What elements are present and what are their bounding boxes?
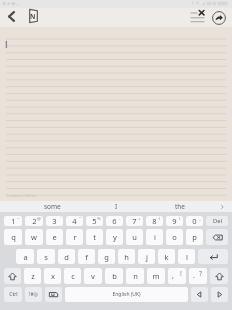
button[interactable]: I [84,201,148,212]
button[interactable]: q [4,229,22,245]
button[interactable]: n [126,268,144,284]
button[interactable]: 5 [86,216,103,226]
button[interactable]: Back [2,9,20,27]
button[interactable]: u [126,229,143,245]
staticText: 7 [132,216,137,226]
button[interactable]: 3 [46,216,63,226]
staticText: ' [60,216,61,222]
button[interactable]: d [58,249,75,264]
button[interactable]: Move right [211,287,228,302]
button[interactable]: r [66,229,83,245]
staticText: z [31,271,35,281]
staticText: I [115,202,118,211]
button[interactable]: l [178,249,195,264]
button[interactable]: f [78,249,95,264]
staticText: o [172,232,177,242]
staticText: 0 [192,216,197,226]
button[interactable]: c [64,268,81,284]
staticText: f [85,252,88,262]
button[interactable]: w [25,229,43,245]
staticText: d [64,252,69,262]
button[interactable]: Move left [191,287,208,302]
staticText: q [11,232,16,242]
button[interactable]: k [158,249,175,264]
staticText: Creative Politics [6,193,38,199]
staticText: b [112,271,117,281]
button[interactable]: p [186,229,203,245]
staticText: _ [199,216,201,222]
staticText: 1 [11,216,16,226]
button[interactable]: a [16,249,34,264]
button[interactable]: . [189,268,207,284]
staticText: y [113,232,117,242]
staticText: Del [213,217,222,225]
button[interactable]: some [20,201,84,212]
button[interactable]: Ctrl [4,287,22,302]
button[interactable]: y [106,229,123,245]
button[interactable]: z [24,268,41,284]
button[interactable]: Shift [210,268,228,284]
staticText: n [133,271,138,281]
button[interactable]: h [118,249,135,264]
button[interactable]: Enter [198,249,228,264]
button[interactable]: 6 [106,216,123,226]
staticText: l [186,252,188,262]
button[interactable]: j [138,249,155,264]
button[interactable]: x [44,268,61,284]
staticText: 6 [112,216,117,226]
staticText: English (UK) [112,291,141,298]
staticText: ( [159,216,161,222]
button[interactable]: 1 [4,216,22,226]
button[interactable]: 9 [166,216,183,226]
button[interactable]: i [146,229,163,245]
staticText: ? [199,269,203,279]
button[interactable]: More suggestions [212,201,232,212]
button[interactable]: !#◎ [25,287,42,302]
staticText: m [152,271,160,281]
button[interactable]: Note type [24,9,42,27]
staticText: c [71,271,75,281]
staticText: u [132,232,137,242]
button[interactable]: Backspace [206,229,228,245]
button[interactable]: 8 [146,216,163,226]
button[interactable]: b [105,268,123,284]
staticText: t [93,232,96,242]
staticText: 2 [32,216,37,226]
staticText: 9 [172,216,177,226]
button[interactable]: the [148,201,212,212]
button[interactable]: o [166,229,183,245]
button[interactable]: 4 [66,216,83,226]
staticText: ) [179,216,181,222]
button[interactable]: English (UK) [65,287,188,302]
button[interactable]: Send [210,9,228,27]
button[interactable]: s [37,249,55,264]
button[interactable]: t [86,229,103,245]
staticText: i [154,232,156,242]
staticText: " [79,216,81,222]
staticText: e [52,232,57,242]
staticText: , [172,271,174,281]
staticText: 4 [72,216,77,226]
button[interactable]: e [46,229,63,245]
staticText: k [164,252,169,262]
staticText: w [31,232,37,242]
button[interactable]: 0 [186,216,203,226]
staticText: j [146,252,148,262]
button[interactable]: v [84,268,102,284]
staticText: ! [180,269,182,279]
button[interactable]: Shift [4,268,21,284]
button[interactable]: Emoji [45,287,62,302]
staticText: - [119,216,121,222]
button[interactable]: m [147,268,165,284]
staticText: 5 [92,216,97,226]
button[interactable]: g [98,249,115,264]
staticText: Ctrl [9,291,18,298]
staticText: x [51,271,55,281]
staticText: N [30,12,36,21]
button[interactable]: Clear formatting [189,9,206,26]
button[interactable]: 7 [126,216,143,226]
button[interactable]: Del [206,216,228,226]
button[interactable]: 2 [25,216,43,226]
staticText: a [23,252,28,262]
button[interactable]: , [168,268,186,284]
